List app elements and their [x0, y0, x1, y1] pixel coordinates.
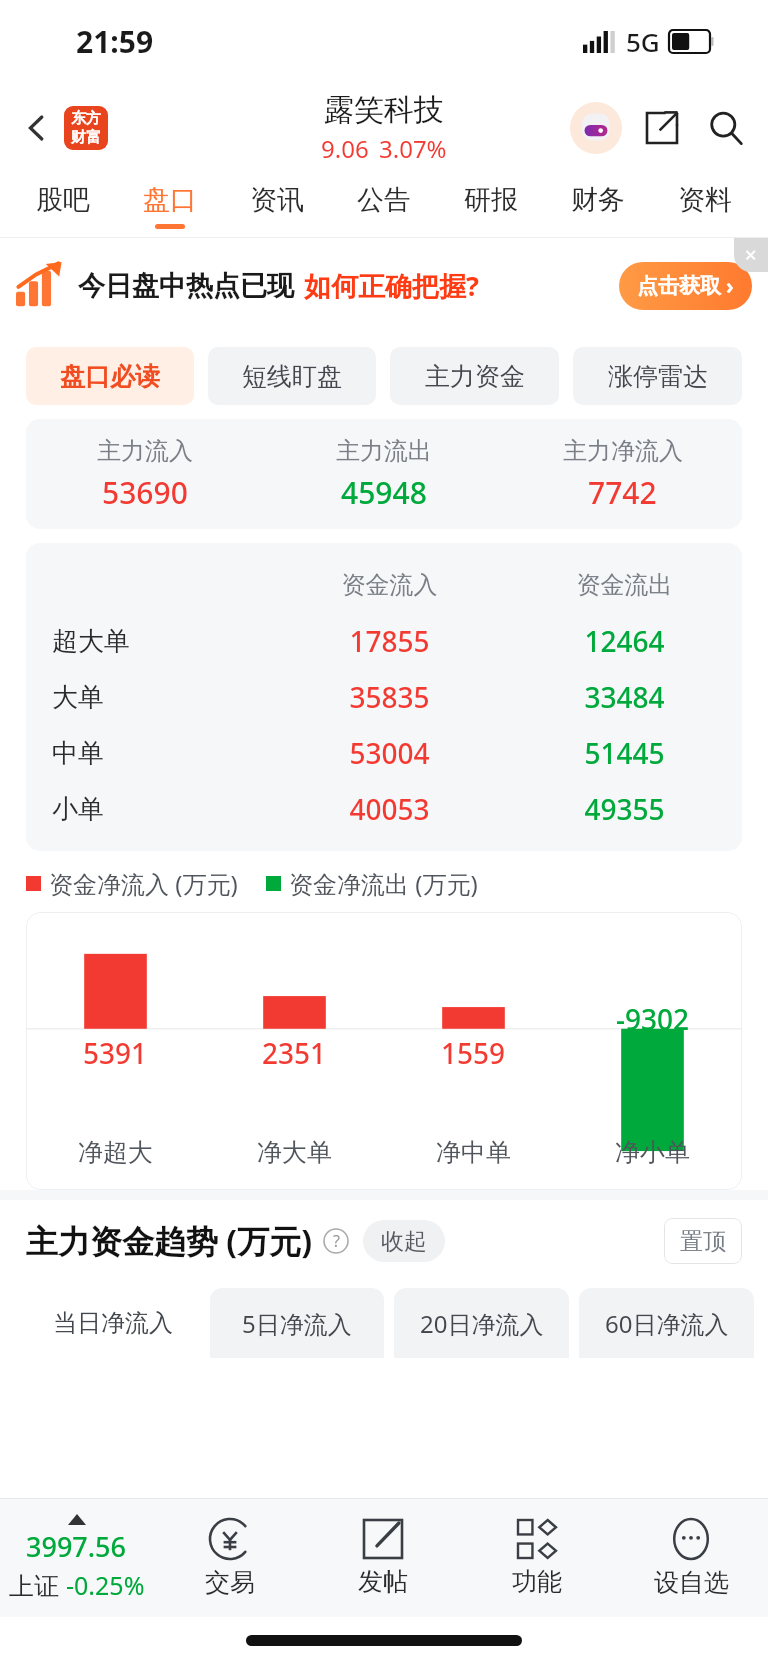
staticText: 12464: [507, 622, 742, 660]
staticText: 股吧: [36, 183, 90, 217]
staticText: 资金净流出 (万元): [289, 867, 478, 900]
staticText: 东方: [71, 109, 101, 128]
staticText: 主力资金: [425, 361, 525, 392]
staticText: 2351: [262, 1034, 327, 1072]
staticText: 大单: [52, 681, 104, 714]
button[interactable]: 盘口: [116, 174, 223, 238]
staticText: 交易: [205, 1567, 255, 1598]
staticText: 净大单: [205, 1137, 384, 1168]
staticText: 上证: [9, 1568, 66, 1602]
staticText: 涨停雷达: [608, 361, 708, 392]
staticText: 当日净流入: [53, 1308, 173, 1338]
staticText: 45948: [341, 472, 427, 513]
button[interactable]: 功能: [460, 1499, 614, 1617]
staticText: 7742: [588, 472, 657, 513]
staticText: 公告: [357, 183, 411, 217]
staticText: 点击获取: [637, 273, 721, 299]
button[interactable]: 短线盯盘: [208, 347, 376, 405]
staticText: 研报: [464, 183, 518, 217]
staticText: 资讯: [250, 183, 304, 217]
staticText: 盘口必读: [60, 361, 160, 392]
button[interactable]: 点击获取: [619, 262, 752, 310]
staticText: 1559: [441, 1034, 506, 1072]
staticText: 资金流入: [272, 570, 507, 600]
button[interactable]: Search: [698, 100, 754, 156]
button[interactable]: 主力资金: [390, 347, 559, 405]
staticText: 小单: [52, 793, 104, 826]
button[interactable]: 资料: [651, 174, 758, 238]
staticText: 40053: [272, 790, 507, 828]
staticText: 资料: [678, 183, 732, 217]
staticText: 3997.56: [26, 1528, 127, 1565]
staticText: 资金净流入 (万元): [49, 867, 238, 900]
button[interactable]: Help: [321, 1226, 351, 1256]
staticText: 净超大: [26, 1137, 205, 1168]
button[interactable]: 财务: [544, 174, 651, 238]
button[interactable]: 设自选: [614, 1499, 768, 1617]
button[interactable]: 20日净流入: [394, 1288, 569, 1358]
staticText: 3.07%: [379, 132, 447, 165]
staticText: 盘口: [143, 183, 197, 217]
button[interactable]: 资讯: [223, 174, 330, 238]
staticText: 设自选: [654, 1567, 729, 1598]
staticText: 49355: [507, 790, 742, 828]
button[interactable]: 3997.56: [0, 1499, 153, 1617]
button[interactable]: 置顶: [664, 1218, 742, 1264]
button[interactable]: 中单: [26, 725, 742, 781]
button[interactable]: 5日净流入: [210, 1288, 384, 1358]
staticText: 功能: [512, 1566, 562, 1597]
staticText: 主力净流入: [563, 436, 683, 466]
staticText: -0.25%: [66, 1568, 145, 1602]
staticText: 超大单: [52, 625, 130, 658]
button[interactable]: Back: [14, 105, 60, 151]
button[interactable]: 涨停雷达: [573, 347, 742, 405]
button[interactable]: 主力流入: [26, 419, 742, 529]
staticText: 净小单: [563, 1137, 742, 1168]
staticText: 53004: [272, 734, 507, 772]
staticText: 21:59: [76, 21, 154, 62]
staticText: 主力流出: [336, 436, 432, 466]
button[interactable]: Share: [634, 100, 690, 156]
staticText: 资金流出: [507, 570, 742, 600]
staticText: 5391: [83, 1034, 148, 1072]
staticText: 净中单: [384, 1137, 563, 1168]
button[interactable]: 盘口必读: [26, 347, 194, 405]
staticText: 5日净流入: [242, 1307, 352, 1340]
staticText: ✕: [744, 246, 758, 265]
button[interactable]: 60日净流入: [579, 1288, 754, 1358]
staticText: -9302: [616, 1000, 690, 1038]
staticText: 今日盘中热点已现: [78, 269, 294, 303]
button[interactable]: 超大单: [26, 613, 742, 669]
staticText: 60日净流入: [605, 1307, 729, 1340]
button[interactable]: 股吧: [10, 174, 116, 238]
staticText: 主力资金趋势 (万元): [26, 1219, 313, 1263]
staticText: 20日净流入: [420, 1307, 544, 1340]
button[interactable]: 公告: [330, 174, 437, 238]
button[interactable]: AI assistant: [568, 100, 624, 156]
button[interactable]: 发帖: [306, 1499, 460, 1617]
staticText: 35835: [272, 678, 507, 716]
staticText: ?: [333, 1230, 340, 1252]
staticText: 9.06: [321, 132, 369, 165]
staticText: 如何正确把握?: [304, 267, 479, 304]
staticText: 发帖: [358, 1566, 408, 1597]
button[interactable]: 交易: [153, 1499, 306, 1617]
staticText: 主力流入: [97, 436, 193, 466]
button[interactable]: 收起: [363, 1220, 445, 1262]
button[interactable]: East Money: [64, 106, 108, 150]
staticText: ›: [726, 272, 734, 301]
button[interactable]: 大单: [26, 669, 742, 725]
staticText: 财务: [571, 183, 625, 217]
staticText: 收起: [381, 1227, 427, 1256]
button[interactable]: 小单: [26, 781, 742, 837]
button[interactable]: 研报: [437, 174, 544, 238]
button[interactable]: 当日净流入: [26, 1288, 200, 1358]
staticText: 财富: [71, 128, 101, 147]
button[interactable]: 5391: [26, 912, 742, 1190]
staticText: 中单: [52, 737, 104, 770]
button[interactable]: Close banner: [734, 238, 768, 272]
staticText: 短线盯盘: [242, 361, 342, 392]
staticText: 17855: [272, 622, 507, 660]
staticText: 置顶: [680, 1227, 726, 1256]
staticText: 33484: [507, 678, 742, 716]
